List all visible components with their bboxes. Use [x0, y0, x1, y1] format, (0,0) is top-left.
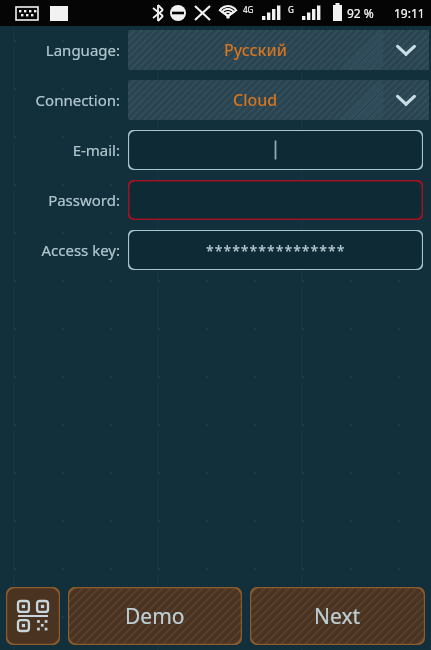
staticText: Password: [48, 190, 120, 210]
staticText: Cloud [233, 89, 278, 111]
button[interactable]: Русский [128, 30, 429, 70]
button[interactable]: Scan QR code [6, 587, 60, 645]
staticText: Connection: [35, 90, 120, 110]
other: Expand Connection: [391, 85, 421, 115]
staticText: 19:11 [394, 5, 425, 21]
staticText: Русский [224, 39, 287, 61]
button[interactable] [128, 130, 423, 170]
staticText: E-mail: [72, 140, 120, 160]
staticText: Access key: [41, 240, 120, 260]
button[interactable]: Next [250, 587, 425, 645]
staticText: G [288, 4, 294, 15]
staticText: Demo [125, 602, 185, 631]
button[interactable] [128, 180, 423, 220]
staticText: Language: [45, 40, 120, 60]
staticText: Next [314, 602, 361, 631]
button[interactable]: Demo [68, 587, 242, 645]
button[interactable]: Cloud [128, 80, 429, 120]
staticText: 92 % [347, 5, 374, 21]
staticText: 4G [243, 4, 254, 15]
staticText: **************** [206, 241, 346, 260]
other: Expand Language: [391, 35, 421, 65]
button[interactable]: **************** [128, 230, 423, 270]
